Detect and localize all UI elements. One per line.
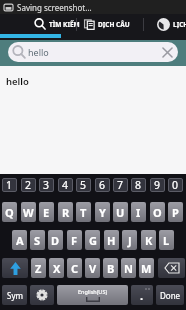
button[interactable]: 4 [58, 178, 73, 192]
staticText: DỊCH CÂU [98, 20, 130, 29]
staticText: B [107, 261, 115, 276]
button[interactable] [30, 285, 54, 305]
staticText: 8 [135, 178, 142, 192]
staticText: C [71, 261, 79, 276]
button[interactable]: 6 [95, 178, 110, 192]
staticText: Z [35, 261, 42, 276]
button[interactable]: DỊCH CÂU [84, 14, 130, 34]
staticText: 2 [25, 178, 32, 192]
staticText: Done [160, 290, 181, 301]
button[interactable]: X [49, 258, 64, 278]
staticText: W [23, 205, 34, 220]
button[interactable] [161, 46, 174, 59]
button[interactable]: M [139, 258, 154, 278]
button[interactable]: A [12, 230, 27, 250]
staticText: D [51, 233, 60, 248]
staticText: L [163, 233, 170, 248]
staticText: 9 [154, 178, 161, 192]
button[interactable]: E [39, 202, 54, 222]
button[interactable]: Y [95, 202, 110, 222]
staticText: hello [6, 75, 29, 88]
staticText: P [172, 205, 179, 220]
staticText: R [62, 205, 70, 220]
button[interactable] [158, 258, 185, 278]
button[interactable]: H [104, 230, 119, 250]
staticText: LỊCH SỬ [173, 20, 186, 29]
button[interactable]: English(US) [57, 285, 128, 305]
staticText: 0 [172, 178, 179, 192]
button[interactable]: U [113, 202, 128, 222]
button[interactable]: F [67, 230, 82, 250]
button[interactable]: 1 [2, 178, 17, 192]
button[interactable]: Sym [2, 285, 27, 305]
button[interactable]: Done [156, 285, 184, 305]
staticText: TÌM KIẾM [49, 20, 80, 29]
staticText: U [116, 205, 125, 220]
button[interactable]: D [48, 230, 63, 250]
staticText: 3 [43, 178, 50, 192]
button[interactable]: 3 [39, 178, 54, 192]
button[interactable]: 7 [113, 178, 128, 192]
staticText: K [145, 233, 153, 248]
button[interactable]: G [85, 230, 100, 250]
staticText: M [141, 261, 152, 276]
button[interactable]: Z [31, 258, 46, 278]
staticText: J [128, 233, 132, 248]
button[interactable]: T [76, 202, 91, 222]
staticText: T [80, 205, 87, 220]
button[interactable]: TÌM KIẾM [34, 14, 80, 34]
button[interactable]: LỊCH SỬ [157, 14, 186, 34]
staticText: Q [5, 205, 14, 220]
staticText: A [16, 233, 24, 248]
staticText: F [71, 233, 78, 248]
staticText: I [136, 205, 141, 220]
button[interactable]: 2 [21, 178, 36, 192]
staticText: H [107, 233, 116, 248]
button[interactable]: L [159, 230, 174, 250]
staticText: 5 [80, 178, 87, 192]
staticText: E [43, 205, 50, 220]
button[interactable]: Q [2, 202, 17, 222]
button[interactable]: 5 [76, 178, 91, 192]
staticText: 6 [99, 178, 106, 192]
staticText: 7 [117, 178, 124, 192]
staticText: Sym [7, 290, 23, 301]
staticText: S [34, 233, 41, 248]
staticText: hello [28, 46, 161, 58]
staticText: 4 [62, 178, 69, 192]
staticText: . [140, 288, 144, 303]
button[interactable]: 0 [168, 178, 183, 192]
staticText: X [53, 261, 61, 276]
button[interactable]: S [30, 230, 45, 250]
button[interactable]: V [85, 258, 100, 278]
staticText: V [89, 261, 97, 276]
button[interactable]: 8 [131, 178, 146, 192]
button[interactable]: . [131, 285, 153, 305]
staticText: G [89, 233, 97, 248]
button[interactable]: K [141, 230, 156, 250]
staticText: N [124, 261, 133, 276]
staticText: Y [99, 205, 106, 220]
button[interactable]: B [103, 258, 118, 278]
staticText: English(US) [78, 288, 108, 295]
staticText: Saving screenshot... [17, 2, 92, 13]
button[interactable]: I [131, 202, 146, 222]
staticText: 1 [6, 178, 13, 192]
button[interactable] [2, 258, 28, 278]
button[interactable]: R [58, 202, 73, 222]
button[interactable]: N [121, 258, 136, 278]
button[interactable]: 9 [150, 178, 165, 192]
button[interactable]: P [168, 202, 183, 222]
staticText: O [153, 205, 162, 220]
button[interactable]: O [150, 202, 165, 222]
button[interactable]: W [21, 202, 36, 222]
button[interactable]: J [122, 230, 137, 250]
button[interactable]: C [67, 258, 82, 278]
button[interactable]: hello [8, 42, 178, 62]
